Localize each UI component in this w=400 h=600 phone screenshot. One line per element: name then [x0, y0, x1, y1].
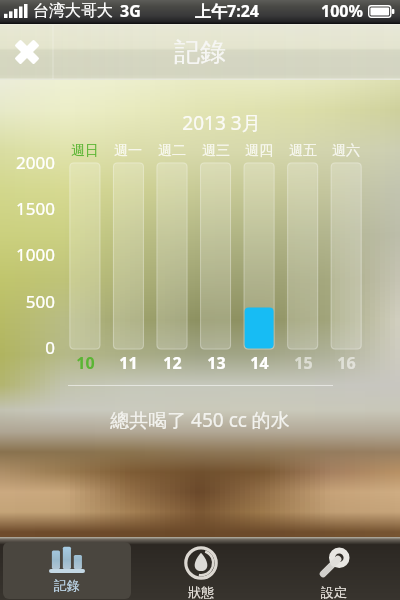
staticText: 記錄: [54, 577, 80, 593]
staticText: 週四: [245, 142, 273, 160]
staticText: 14: [250, 352, 269, 374]
staticText: 週日: [71, 142, 99, 160]
staticText: 記錄: [174, 36, 226, 69]
staticText: 2000: [16, 151, 55, 174]
staticText: 13: [207, 352, 226, 374]
staticText: 狀態: [188, 584, 214, 599]
staticText: 週三: [202, 142, 230, 160]
button[interactable]: 狀態: [137, 542, 264, 599]
staticText: 3G: [120, 0, 141, 22]
staticText: 上午7:24: [195, 0, 259, 22]
button[interactable]: Close: [0, 24, 53, 80]
staticText: 週二: [158, 142, 186, 160]
staticText: 1000: [16, 243, 55, 266]
staticText: 500: [25, 290, 55, 313]
staticText: 16: [337, 352, 356, 374]
staticText: 週一: [114, 142, 142, 160]
staticText: 11: [119, 352, 138, 374]
staticText: 總共喝了 450 cc 的水: [110, 407, 290, 433]
staticText: 週六: [332, 142, 360, 160]
staticText: 台湾大哥大: [33, 1, 113, 21]
staticText: 週五: [289, 142, 317, 160]
staticText: 2013 3月: [182, 110, 261, 136]
staticText: 0: [45, 336, 55, 359]
staticText: 12: [163, 352, 182, 374]
staticText: 設定: [321, 584, 347, 599]
button[interactable]: 記錄: [3, 542, 131, 599]
staticText: 100%: [321, 0, 363, 22]
staticText: 10: [76, 352, 95, 374]
button[interactable]: 設定: [270, 542, 397, 599]
staticText: 15: [294, 352, 313, 374]
staticText: 1500: [16, 197, 55, 220]
